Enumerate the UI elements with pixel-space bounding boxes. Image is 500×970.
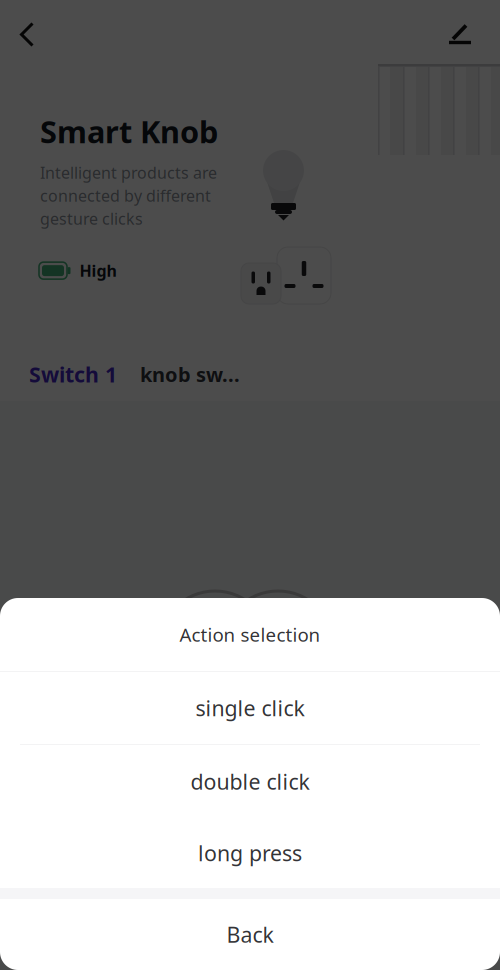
staticText: gesture clicks [40,208,143,229]
button[interactable]: Edit device [431,1,500,58]
staticText: High [79,260,116,281]
button[interactable]: Back [0,899,500,970]
staticText: knob sw... [140,361,240,387]
button[interactable]: single click [0,672,500,744]
button[interactable]: Switch 1 [0,347,129,401]
button[interactable]: Back [0,0,52,59]
staticText: long press [198,839,302,867]
staticText: Intelligent products are [40,162,217,183]
button[interactable]: double click [0,745,500,818]
staticText: Action selection [179,622,320,647]
staticText: single click [195,694,304,722]
staticText: Back [226,920,273,949]
button[interactable]: long press [0,818,500,888]
button[interactable]: knob sw... [129,348,262,400]
staticText: double click [190,767,309,796]
staticText: Switch 1 [29,360,117,388]
staticText: Smart Knob [40,111,218,152]
staticText: connected by different [40,185,211,206]
